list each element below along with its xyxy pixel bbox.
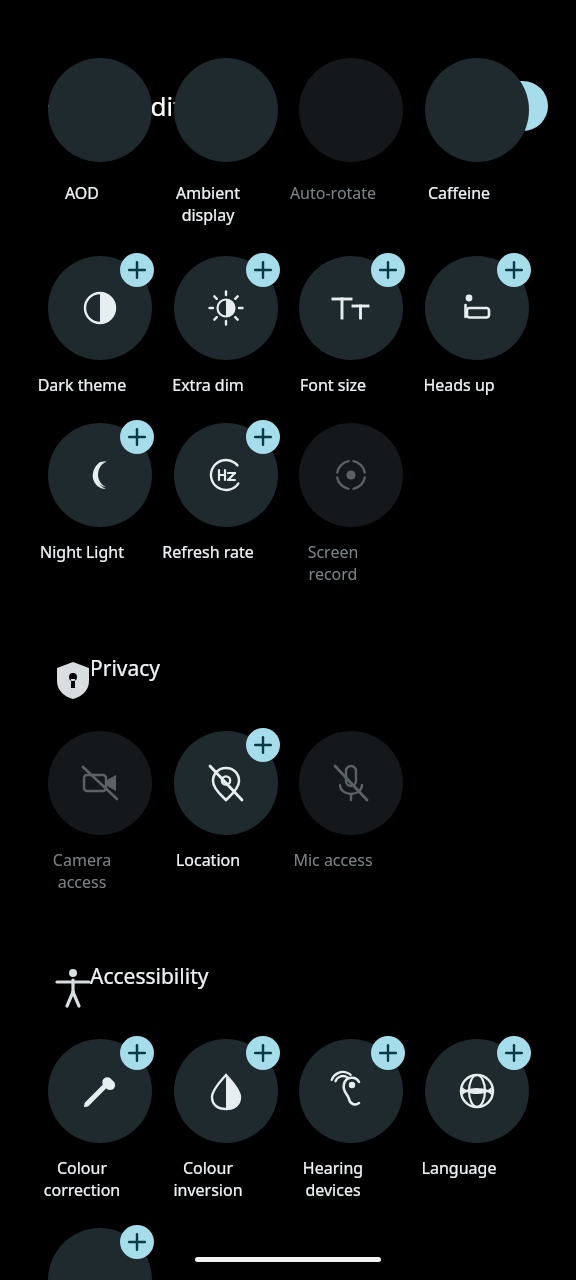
button[interactable]: Night Light [48,423,152,601]
staticText: Hearing devices [281,1157,385,1201]
button[interactable]: Refresh rate [174,423,278,601]
button[interactable]: Dark theme [48,256,152,434]
button[interactable]: AOD [48,140,152,240]
staticText: Auto-rotate [281,182,385,204]
button[interactable]: Back [36,82,84,130]
button[interactable]: Font size [299,256,403,434]
staticText: Extra dim [156,374,260,396]
staticText: Camera access [30,849,134,893]
button[interactable]: Screen record [299,423,403,601]
button[interactable]: Hearing devices [299,1039,403,1217]
button[interactable]: Caffeine [425,140,529,240]
button[interactable]: Auto-rotate [299,140,403,240]
button[interactable]: Colour correction [48,1039,152,1217]
button[interactable]: Mic access [299,731,403,909]
button[interactable]: Location [174,731,278,909]
button[interactable] [48,1228,152,1268]
staticText: Caffeine [407,182,511,204]
staticText: Privacy [90,654,161,683]
staticText: Screen record [281,541,385,585]
staticText: Heads up [407,374,511,396]
button[interactable]: Reset [461,81,548,131]
staticText: AOD [30,182,134,204]
button[interactable]: Camera access [48,731,152,909]
staticText: Colour inversion [156,1157,260,1201]
button[interactable]: Extra dim [174,256,278,434]
staticText: Dark theme [30,374,134,396]
staticText: Mic access [281,849,385,871]
button[interactable]: Colour inversion [174,1039,278,1217]
staticText: Location [156,849,260,871]
button[interactable]: Ambient display [174,140,278,240]
staticText: Colour correction [30,1157,134,1201]
button[interactable]: Heads up [425,256,529,434]
staticText: Font size [281,374,385,396]
staticText: Language [407,1157,511,1179]
staticText: Edit tiles [136,88,240,123]
staticText: Night Light [30,541,134,563]
staticText: Refresh rate [156,541,260,563]
staticText: Ambient display [156,182,260,226]
staticText: Accessibility [90,962,209,991]
button[interactable]: Language [425,1039,529,1217]
